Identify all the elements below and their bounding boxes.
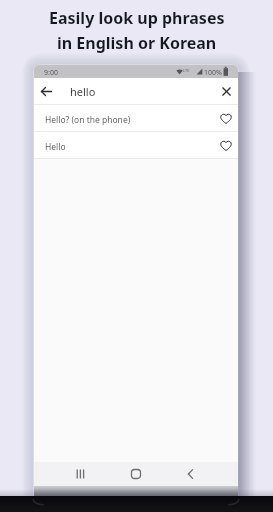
button[interactable] bbox=[218, 83, 235, 100]
button[interactable] bbox=[182, 465, 200, 483]
staticText: hello bbox=[70, 84, 96, 99]
staticText: 100% bbox=[204, 68, 222, 78]
button[interactable]: hello bbox=[62, 78, 212, 104]
button[interactable] bbox=[127, 465, 145, 483]
button[interactable] bbox=[38, 83, 55, 100]
button[interactable] bbox=[72, 465, 90, 483]
button[interactable]: Hello bbox=[34, 132, 238, 159]
staticText: Hello? (on the phone) bbox=[45, 114, 131, 126]
button[interactable]: Hello? (on the phone) bbox=[34, 105, 238, 132]
staticText: in English or Korean bbox=[57, 32, 217, 54]
button[interactable] bbox=[219, 112, 233, 126]
staticText: LTE bbox=[183, 68, 190, 73]
button[interactable] bbox=[219, 139, 233, 153]
staticText: 9:00 bbox=[44, 68, 58, 78]
staticText: Hello bbox=[45, 141, 66, 153]
staticText: Easily look up phrases bbox=[49, 7, 225, 29]
